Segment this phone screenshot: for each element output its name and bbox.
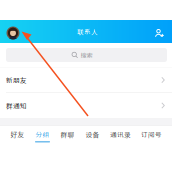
button[interactable]: 好友 [10, 130, 25, 142]
button[interactable]: 群通知 [0, 93, 172, 118]
button[interactable]: 搜索 [0, 43, 172, 67]
staticText: 通讯录 [110, 130, 131, 139]
staticText: 搜索 [80, 51, 92, 59]
button[interactable]: 群聊 [60, 130, 75, 142]
staticText: 群通知 [6, 101, 27, 110]
staticText: 订阅号 [141, 130, 162, 139]
staticText: 新朋友 [6, 75, 27, 85]
button[interactable]: 新朋友 [0, 67, 172, 92]
button[interactable]: Add contact [155, 25, 172, 38]
button[interactable]: 订阅号 [141, 130, 162, 142]
button[interactable]: 通讯录 [110, 130, 131, 142]
staticText: 联系人 [77, 27, 98, 36]
staticText: 好友 [10, 130, 24, 139]
button[interactable]: 设备 [85, 130, 100, 142]
staticText: 群聊 [60, 130, 74, 139]
staticText: 设备 [85, 130, 99, 139]
staticText: 分组 [35, 130, 49, 139]
button[interactable]: 分组 [35, 130, 50, 142]
button[interactable]: Profile [0, 23, 19, 39]
